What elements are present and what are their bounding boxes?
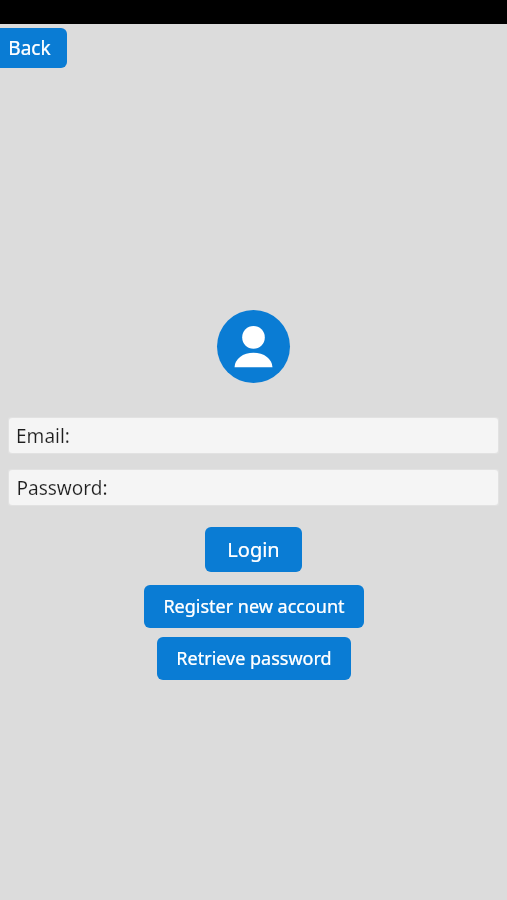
staticText: Register new account <box>163 594 345 619</box>
staticText: Password: <box>16 475 108 501</box>
button[interactable]: Email: <box>9 418 498 453</box>
button[interactable]: Register new account <box>144 585 364 628</box>
button[interactable]: Retrieve password <box>157 637 351 680</box>
button[interactable]: Password: <box>9 470 498 505</box>
staticText: Back <box>8 35 51 61</box>
button[interactable]: Back <box>0 28 67 68</box>
button[interactable]: Login <box>205 527 302 572</box>
staticText: Email: <box>16 423 70 449</box>
staticText: Login <box>227 536 280 563</box>
staticText: Retrieve password <box>176 646 332 671</box>
other: Account avatar <box>217 310 290 383</box>
